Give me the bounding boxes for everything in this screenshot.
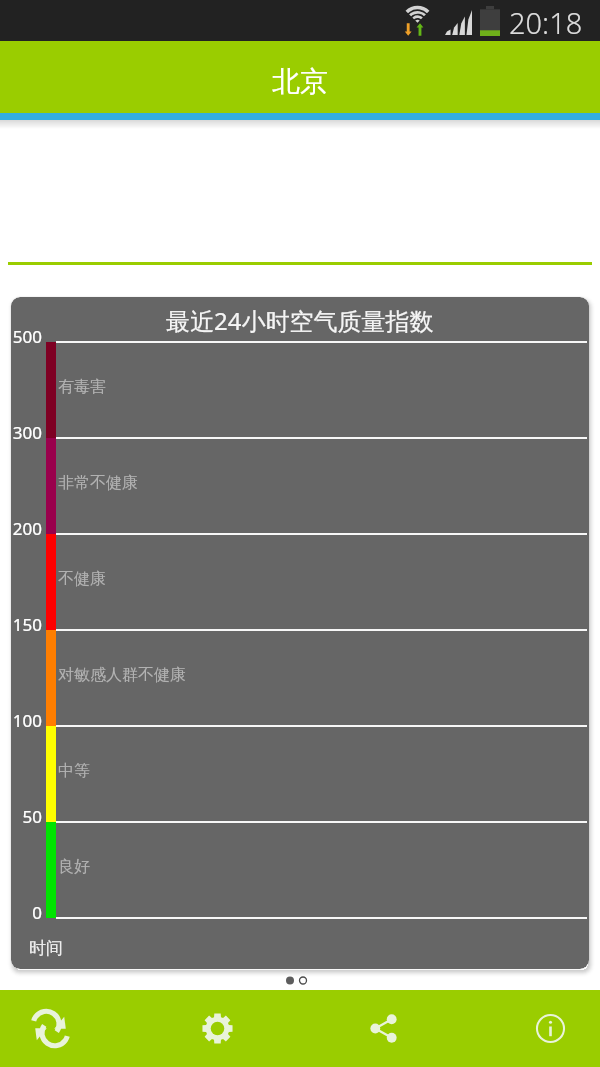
staticText: 最近24小时空气质量指数: [166, 304, 434, 337]
staticText: 300: [11, 421, 42, 444]
staticText: 150: [11, 613, 42, 636]
staticText: 20:18: [509, 3, 583, 42]
button[interactable]: Info: [475, 990, 600, 1067]
staticText: 不健康: [58, 569, 106, 589]
staticText: 0: [11, 901, 42, 924]
staticText: 非常不健康: [58, 473, 138, 493]
staticText: 中等: [58, 761, 90, 781]
staticText: 北京: [272, 64, 328, 99]
staticText: 500: [11, 325, 42, 348]
button[interactable]: Share: [308, 990, 458, 1067]
button[interactable]: 北京: [0, 41, 600, 113]
staticText: 100: [11, 709, 42, 732]
button[interactable]: Refresh: [0, 990, 125, 1067]
staticText: 良好: [58, 857, 90, 877]
staticText: 有毒害: [58, 377, 106, 397]
button[interactable]: 最近24小时空气质量指数: [11, 297, 589, 969]
staticText: 200: [11, 517, 42, 540]
staticText: 时间: [29, 938, 63, 959]
staticText: 50: [11, 805, 42, 828]
button[interactable]: Settings: [142, 990, 292, 1067]
staticText: 对敏感人群不健康: [58, 665, 186, 685]
